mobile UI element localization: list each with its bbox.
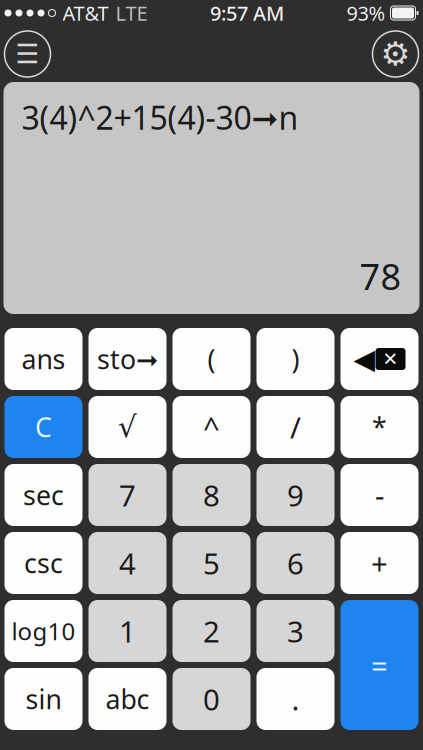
button[interactable]: . [256, 668, 334, 730]
button[interactable]: √ [88, 396, 166, 458]
staticText: ) [291, 341, 299, 377]
button[interactable]: * [340, 396, 418, 458]
staticText: ☰ [15, 39, 39, 69]
staticText: 5 [203, 543, 220, 582]
staticText: 6 [287, 543, 304, 582]
staticText: 2 [203, 611, 220, 650]
staticText: ans [21, 341, 65, 377]
staticText: ✕ [382, 348, 398, 370]
staticText: ( [207, 341, 215, 377]
staticText: 3 [287, 611, 304, 650]
staticText: + [371, 543, 388, 582]
button[interactable]: 6 [256, 532, 334, 594]
button[interactable]: ( [172, 328, 250, 390]
button[interactable]: / [256, 396, 334, 458]
button[interactable]: Menu [4, 31, 50, 77]
staticText: LTE [115, 0, 147, 26]
button[interactable]: log10 [4, 600, 82, 662]
staticText: log10 [11, 615, 75, 647]
button[interactable]: C [4, 396, 82, 458]
staticText: 78 [359, 252, 401, 300]
staticText: ^ [203, 407, 220, 446]
button[interactable]: 4 [88, 532, 166, 594]
staticText: 9 [287, 475, 304, 514]
button[interactable]: 1 [88, 600, 166, 662]
button[interactable]: sec [4, 464, 82, 526]
button[interactable]: 2 [172, 600, 250, 662]
staticText: - [375, 475, 384, 514]
button[interactable]: Settings [372, 31, 418, 77]
staticText: / [290, 407, 301, 446]
button[interactable]: ans [4, 328, 82, 390]
button[interactable]: csc [4, 532, 82, 594]
button[interactable]: + [340, 532, 418, 594]
button[interactable]: 3 [256, 600, 334, 662]
staticText: sec [23, 477, 64, 513]
button[interactable]: 5 [172, 532, 250, 594]
staticText: ⚙ [380, 35, 410, 73]
staticText: 0 [203, 679, 220, 718]
staticText: √ [118, 410, 137, 444]
button[interactable]: ^ [172, 396, 250, 458]
button[interactable]: abc [88, 668, 166, 730]
button[interactable]: ) [256, 328, 334, 390]
staticText: 4 [119, 543, 136, 582]
staticText: = [371, 645, 388, 684]
button[interactable]: Delete [340, 328, 418, 390]
staticText: sto➞ [97, 341, 158, 377]
staticText: 3(4)^2+15(4)-30➞n [21, 96, 298, 138]
staticText: 9:57 AM [210, 0, 284, 26]
staticText: sin [25, 681, 61, 717]
button[interactable]: - [340, 464, 418, 526]
staticText: 7 [119, 475, 136, 514]
staticText: C [35, 409, 52, 445]
staticText: * [372, 409, 387, 445]
button[interactable]: 9 [256, 464, 334, 526]
button[interactable]: sto➞ [88, 328, 166, 390]
button[interactable]: 8 [172, 464, 250, 526]
button[interactable]: sin [4, 668, 82, 730]
staticText: csc [24, 545, 63, 581]
button[interactable]: = [340, 600, 418, 730]
button[interactable]: 7 [88, 464, 166, 526]
staticText: AT&T [62, 0, 108, 26]
staticText: 1 [119, 611, 136, 650]
staticText: 8 [203, 475, 220, 514]
staticText: . [291, 679, 299, 718]
staticText: ◀ [353, 343, 375, 375]
staticText: 93% [346, 0, 385, 26]
staticText: abc [105, 681, 149, 717]
button[interactable]: 0 [172, 668, 250, 730]
